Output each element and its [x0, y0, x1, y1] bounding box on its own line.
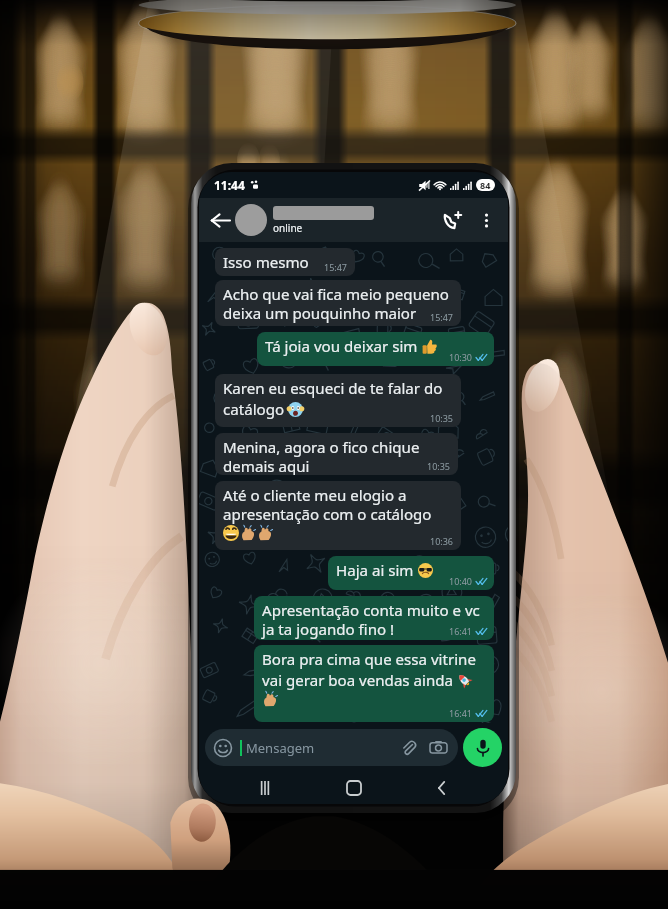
staticText: Menina, agora o fico chique demais aqui [223, 437, 420, 475]
staticText: Karen eu esqueci de te falar do [223, 378, 443, 399]
staticText: 15:47 [324, 261, 348, 273]
staticText: Bora pra cima que essa vitrine [262, 649, 476, 670]
button[interactable]: Back [207, 207, 233, 233]
staticText: Apresentação conta muito e vc ja ta joga… [262, 600, 480, 639]
button[interactable]: online [235, 204, 437, 236]
staticText: Isso mesmo [223, 252, 309, 273]
staticText: Haja ai sim [336, 560, 418, 581]
staticText: 15:47 [430, 311, 454, 323]
button[interactable]: Bora pra cima que essa vitrine [254, 645, 494, 722]
staticText: Até o cliente meu elogio a apresentação … [223, 485, 432, 524]
staticText: 11:44 [214, 177, 245, 193]
button[interactable]: Mensagem [205, 729, 458, 766]
staticText: 10:36 [430, 535, 454, 547]
button[interactable]: Voice message [463, 728, 502, 767]
button[interactable]: Haja ai sim [328, 556, 494, 590]
staticText: Tá joia vou deixar sim [265, 336, 422, 357]
button[interactable]: More options [474, 208, 498, 232]
other: Attach [400, 740, 416, 756]
button[interactable]: Video call [437, 205, 467, 235]
staticText: 10:30 [449, 351, 473, 363]
staticText: 10:35 [427, 460, 451, 472]
staticText: catálogo [223, 399, 288, 420]
button[interactable]: Acho que vai fica meio pequeno deixa um … [215, 280, 461, 326]
staticText: vai gerar boa vendas ainda [262, 670, 457, 691]
button[interactable]: Isso mesmo [215, 248, 355, 276]
button[interactable]: Back [420, 771, 464, 804]
staticText: online [273, 221, 303, 235]
button[interactable]: Karen eu esqueci de te falar do [215, 374, 461, 427]
button[interactable]: Tá joia vou deixar sim [257, 332, 494, 366]
staticText: 10:35 [430, 412, 454, 424]
other: Camera [430, 739, 447, 756]
button[interactable]: Home [332, 771, 376, 804]
staticText: 84 [480, 179, 491, 191]
button[interactable]: Recents [243, 771, 287, 804]
button[interactable]: Menina, agora o fico chique demais aqui [215, 433, 458, 475]
staticText: 10:40 [449, 575, 473, 587]
staticText: 16:41 [449, 707, 473, 719]
staticText: 16:41 [449, 625, 473, 637]
staticText: Mensagem [246, 739, 315, 757]
button[interactable]: Apresentação conta muito e vc ja ta joga… [254, 596, 494, 640]
button[interactable]: Até o cliente meu elogio a apresentação … [215, 481, 461, 550]
staticText: Acho que vai fica meio pequeno deixa um … [223, 284, 449, 323]
